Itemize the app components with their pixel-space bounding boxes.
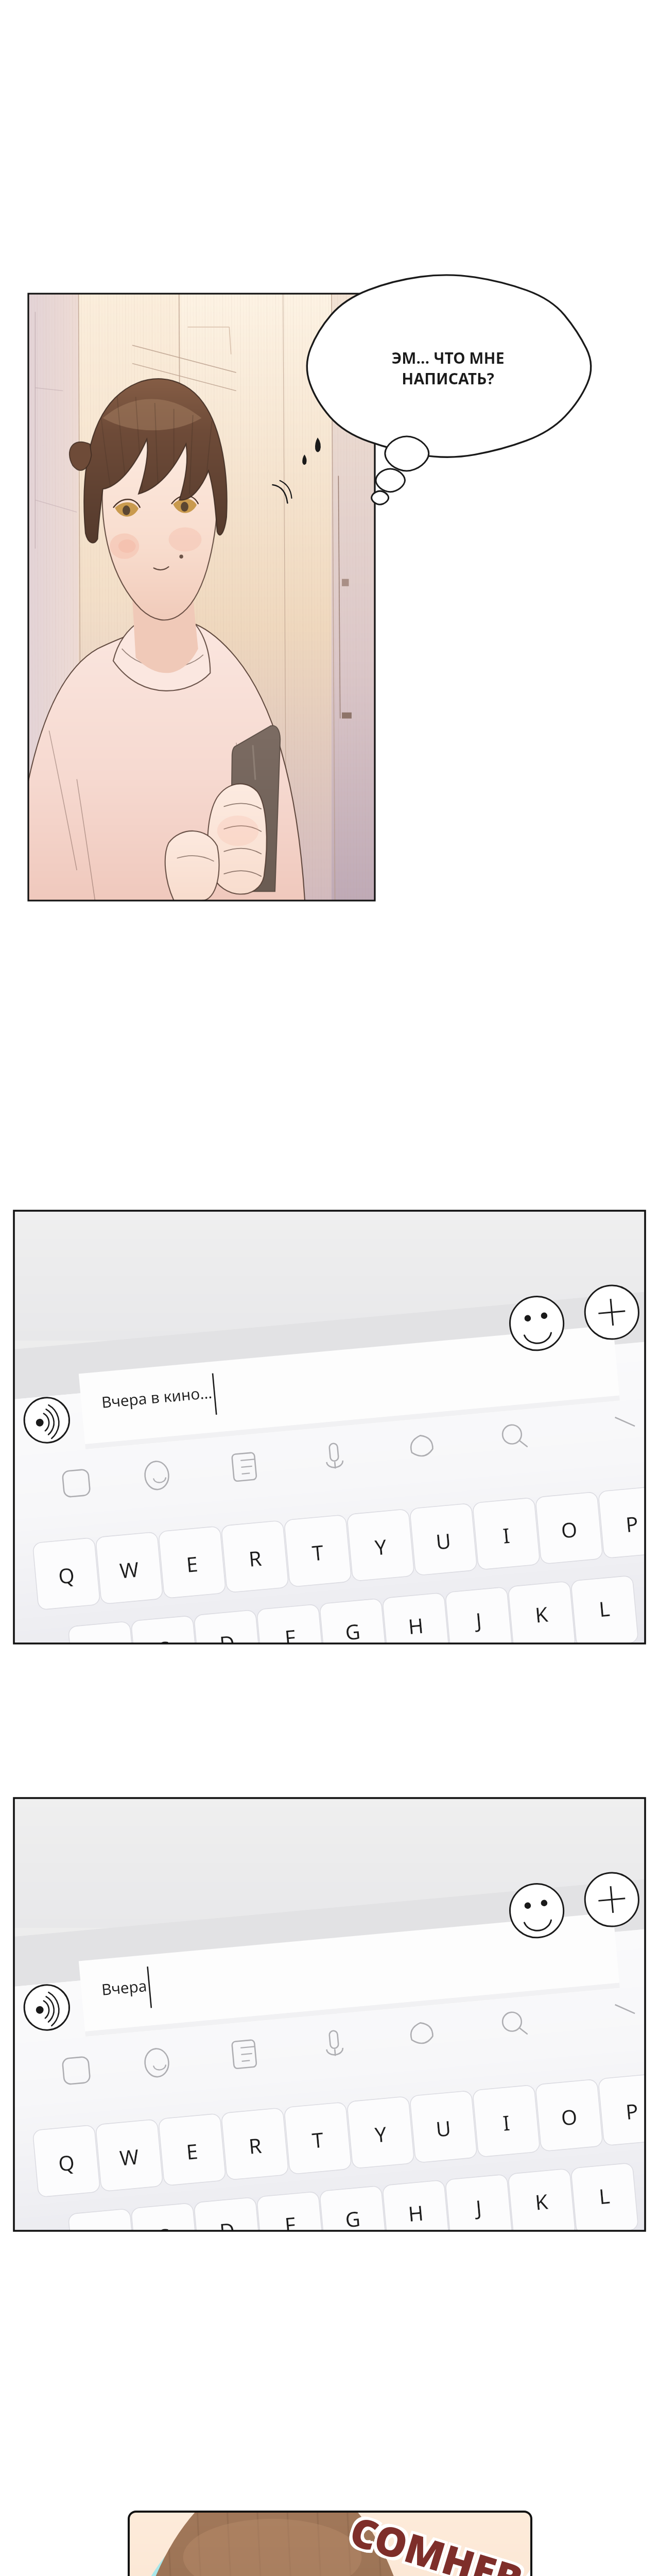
button[interactable]: Webtoon episode page — [0, 0, 659, 2576]
